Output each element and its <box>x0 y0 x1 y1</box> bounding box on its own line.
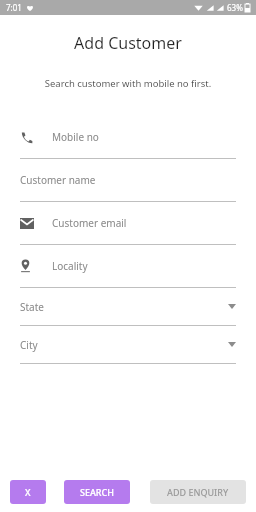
button[interactable]: ADD ENQUIRY <box>150 480 246 504</box>
staticText: Mobile no <box>52 130 99 144</box>
button[interactable]: Phone <box>0 116 256 159</box>
staticText: 7:01 <box>6 2 22 13</box>
button[interactable]: SEARCH <box>64 480 130 504</box>
other: Email <box>20 218 34 229</box>
staticText: Add Customer <box>0 32 256 54</box>
staticText: State <box>20 300 44 314</box>
staticText: SEARCH <box>80 486 114 498</box>
staticText: Customer email <box>52 216 127 230</box>
button[interactable]: Customer name <box>0 159 256 202</box>
staticText: City <box>20 338 38 352</box>
staticText: 63% <box>227 2 243 13</box>
button[interactable]: X <box>10 480 46 504</box>
staticText: X <box>25 486 31 498</box>
button[interactable]: Email <box>0 202 256 245</box>
staticText: Search customer with mobile no first. <box>0 77 256 90</box>
staticText: ADD ENQUIRY <box>167 486 229 498</box>
other: Phone <box>20 131 33 144</box>
button[interactable]: State <box>0 288 256 326</box>
other: Locality <box>20 259 31 273</box>
button[interactable]: City <box>0 326 256 364</box>
staticText: Locality <box>52 259 88 273</box>
button[interactable]: Locality <box>0 245 256 288</box>
staticText: Customer name <box>20 173 96 187</box>
